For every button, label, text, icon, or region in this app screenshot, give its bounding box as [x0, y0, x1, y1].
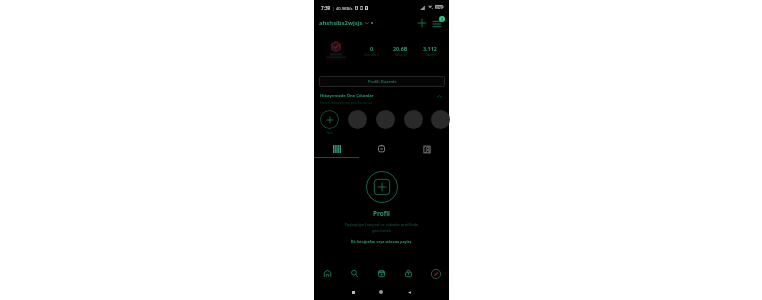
- button[interactable]: Highlight: [404, 110, 423, 129]
- button[interactable]: ahshsibs2wjsjs: [319, 18, 373, 27]
- button[interactable]: Menu: [430, 17, 443, 30]
- button[interactable]: New highlight: [320, 110, 339, 129]
- staticText: |: [332, 6, 335, 11]
- button[interactable]: Shop: [395, 264, 422, 283]
- staticText: Gönderi: [364, 52, 380, 57]
- staticText: Profili Düzenle: [368, 79, 397, 85]
- staticText: DND: [436, 5, 444, 9]
- button[interactable]: Search: [341, 264, 368, 283]
- button[interactable]: Tagged: [404, 140, 449, 157]
- button[interactable]: 0: [357, 45, 387, 57]
- button[interactable]: Collapse highlights: [434, 91, 445, 102]
- button[interactable]: Profili Düzenle: [319, 76, 445, 87]
- button[interactable]: Recent apps: [347, 286, 359, 298]
- button[interactable]: Profile photo: [323, 38, 349, 64]
- staticText: 20,6B: [393, 45, 408, 52]
- staticText: 7:39: [321, 5, 331, 11]
- staticText: 2: [441, 17, 443, 22]
- button[interactable]: İlk fotoğrafını veya videonu paylaş: [349, 238, 414, 245]
- staticText: Yeni: [326, 130, 333, 135]
- staticText: Takipçi: [394, 52, 407, 57]
- button[interactable]: Highlight: [348, 110, 367, 129]
- button[interactable]: Create new post: [366, 171, 398, 203]
- staticText: Favori hikayelerini profilinde tut: [320, 100, 373, 105]
- staticText: Takip: [425, 52, 435, 57]
- button[interactable]: 3.112: [415, 45, 445, 57]
- button[interactable]: New post: [415, 16, 428, 29]
- staticText: 0: [370, 45, 374, 52]
- staticText: 3.112: [423, 45, 437, 52]
- button[interactable]: Home: [314, 264, 341, 283]
- staticText: Hikayenizde Öne Çıkanlar: [320, 93, 374, 99]
- button[interactable]: Reels: [368, 264, 395, 283]
- button[interactable]: Home: [375, 286, 387, 298]
- staticText: Profil: [373, 209, 390, 218]
- staticText: ahshsibs2wjsjs: [319, 19, 363, 27]
- staticText: İlk fotoğrafını veya videonu paylaş: [351, 239, 412, 244]
- button[interactable]: Highlight: [376, 110, 395, 129]
- button[interactable]: Posts grid: [314, 140, 359, 157]
- button[interactable]: Highlight: [431, 110, 450, 129]
- button[interactable]: Reels: [359, 140, 404, 157]
- button[interactable]: Profile: [422, 264, 449, 283]
- button[interactable]: Back: [403, 286, 415, 298]
- staticText: Paylaştığın fotoğraf ve videolar profili…: [343, 222, 420, 233]
- button[interactable]: 20,6B: [385, 45, 415, 57]
- staticText: 40.9KB/s: [336, 6, 353, 11]
